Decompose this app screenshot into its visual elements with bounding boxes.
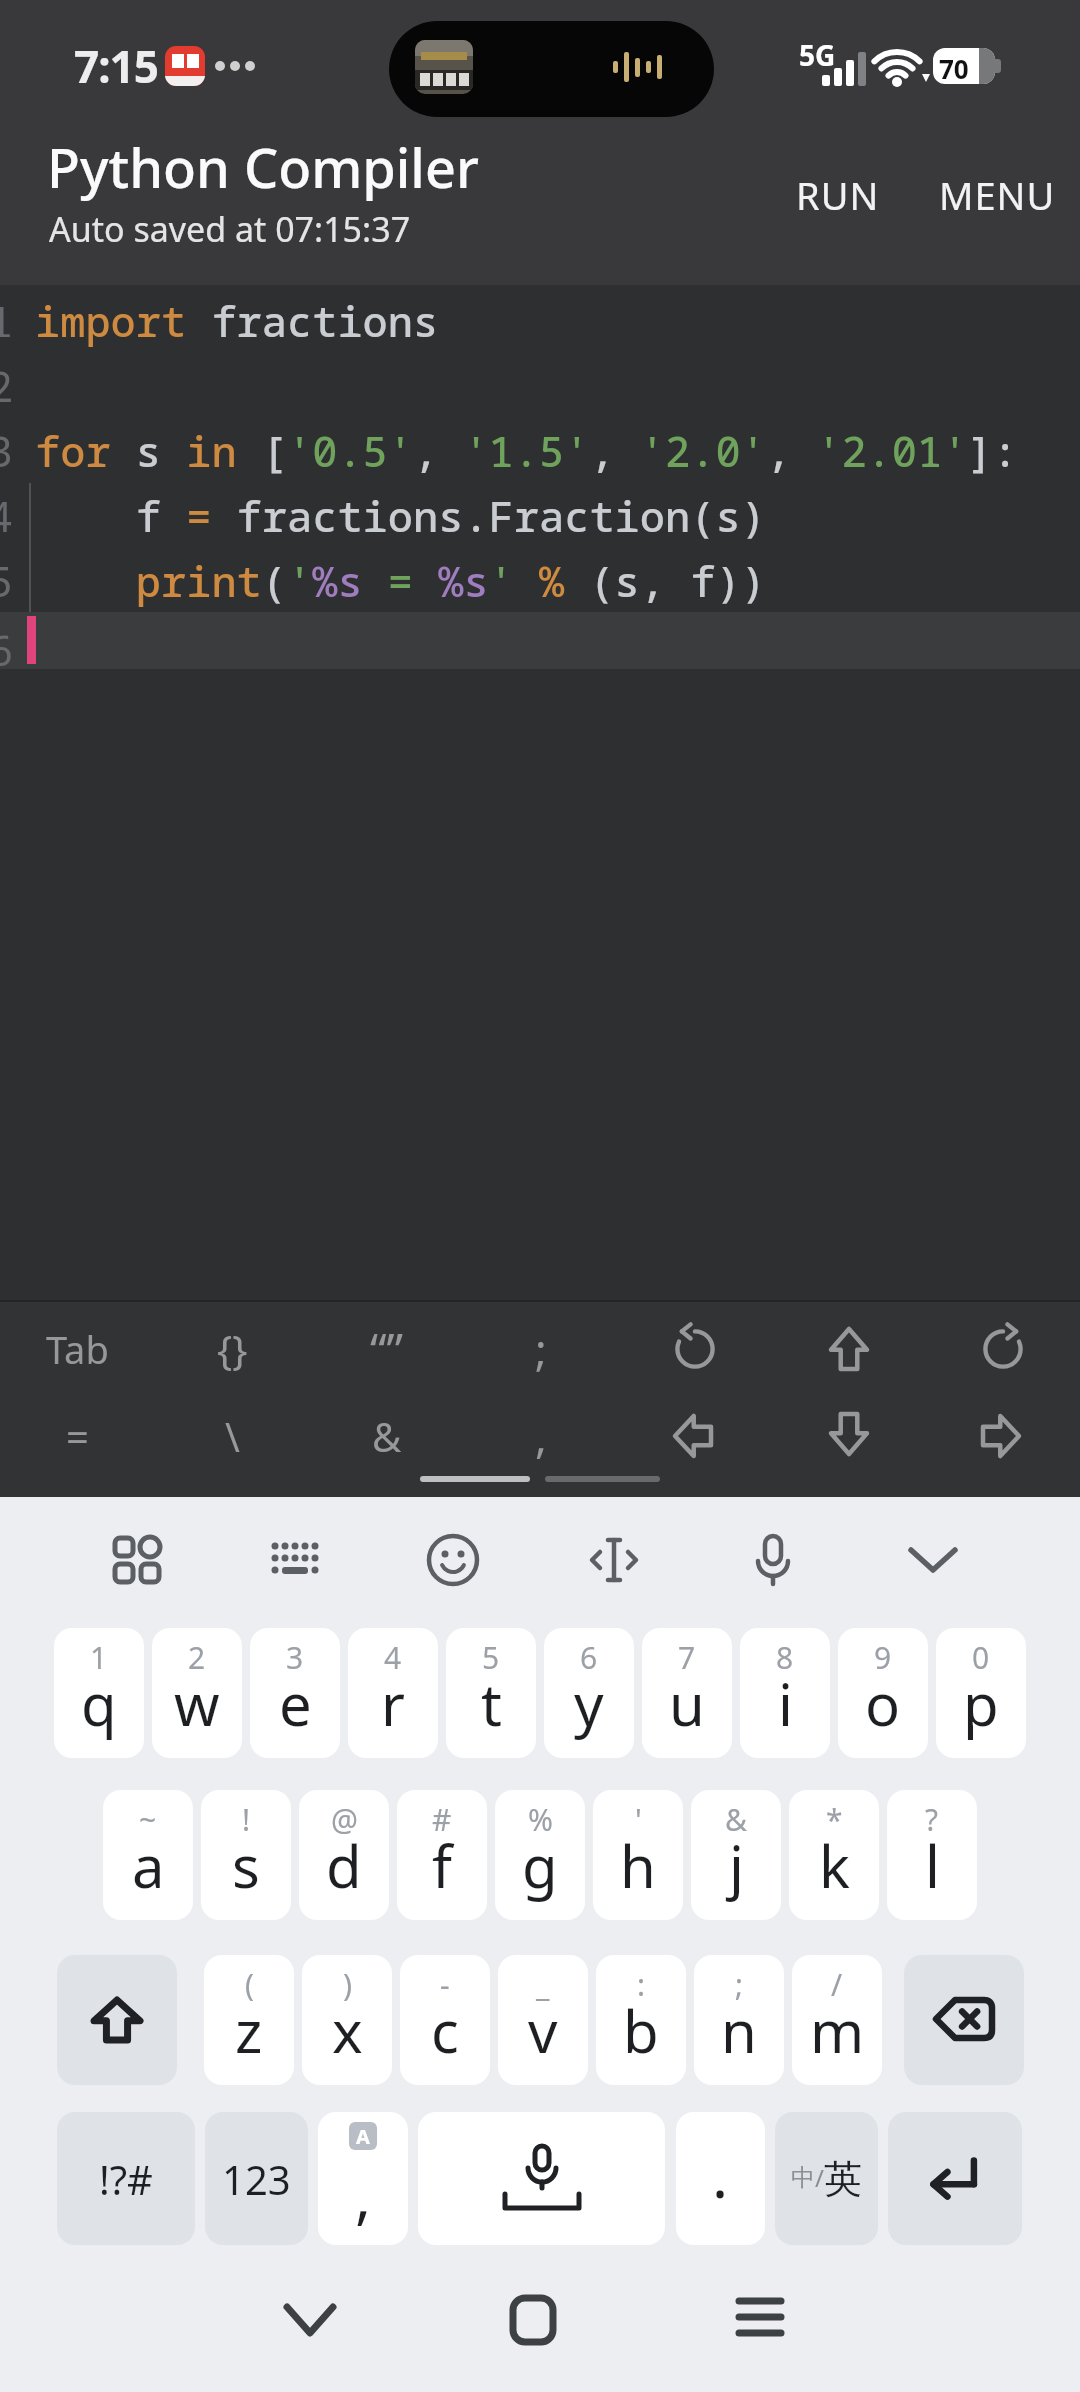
button[interactable] [413,1520,493,1600]
staticText: d [326,1826,362,1905]
staticText: y [574,1664,604,1743]
button[interactable]: “” [310,1305,464,1393]
button[interactable]: - [400,1955,490,2085]
button[interactable]: {} [155,1305,310,1393]
staticText: A [356,2123,370,2150]
button[interactable]: / [792,1955,882,2085]
staticText: 70 [939,51,969,84]
staticText: ' [635,1799,642,1840]
button[interactable] [97,1520,177,1600]
staticText: 1 [0,292,14,349]
button[interactable]: ; [694,1955,784,2085]
button[interactable]: 0 [936,1628,1026,1758]
button[interactable]: % [495,1790,585,1920]
staticText: # [432,1799,452,1840]
staticText: m [810,1991,865,2070]
button[interactable] [772,1393,926,1478]
staticText: 5 [0,552,14,609]
button[interactable]: & [310,1393,464,1478]
button[interactable]: & [691,1790,781,1920]
staticText: v [528,1991,558,2070]
button[interactable]: 5 [446,1628,536,1758]
button[interactable]: _ [498,1955,588,2085]
button[interactable]: ~ [103,1790,193,1920]
staticText: Python Compiler [47,130,479,204]
button[interactable]: 1 [54,1628,144,1758]
button[interactable] [733,1520,813,1600]
button[interactable] [888,2112,1022,2245]
button[interactable]: 中 [775,2112,878,2245]
staticText: r [381,1664,405,1743]
button[interactable]: ! [201,1790,291,1920]
button[interactable] [255,1520,335,1600]
staticText: 5 [482,1637,500,1678]
button[interactable]: * [789,1790,879,1920]
staticText: j [729,1826,744,1905]
button[interactable]: A [318,2112,408,2245]
staticText: : [637,1964,646,2005]
staticText: 8 [776,1637,794,1678]
button[interactable] [772,1305,926,1393]
button[interactable] [57,1955,177,2085]
button[interactable]: ( [204,1955,294,2085]
staticText: o [865,1664,901,1743]
button[interactable]: @ [299,1790,389,1920]
button[interactable]: \ [155,1393,310,1478]
button[interactable]: 7 [642,1628,732,1758]
button[interactable]: ' [593,1790,683,1920]
button[interactable]: = [0,1393,155,1478]
staticText: 0 [972,1637,990,1678]
button[interactable]: ? [887,1790,977,1920]
button[interactable]: ) [302,1955,392,2085]
staticText: i [778,1664,793,1743]
staticText: 6 [0,621,14,678]
button[interactable]: 8 [740,1628,830,1758]
button[interactable] [893,1520,973,1600]
button[interactable] [904,1955,1024,2085]
staticText: Tab [46,1323,109,1375]
button[interactable]: 123 [205,2112,308,2245]
button[interactable]: 2 [152,1628,242,1758]
staticText: / [815,2161,824,2194]
button[interactable]: 4 [348,1628,438,1758]
button[interactable]: 6 [544,1628,634,1758]
staticText: & [372,1409,402,1463]
button[interactable]: 9 [838,1628,928,1758]
staticText: a [132,1826,165,1905]
staticText: ~ [139,1799,157,1840]
button[interactable]: . [676,2112,765,2245]
button[interactable]: MENU [927,160,1067,230]
staticText: 7:15 [74,36,158,96]
button[interactable]: : [596,1955,686,2085]
staticText: ( [245,1964,254,2005]
staticText: e [279,1664,312,1743]
button[interactable] [493,2280,573,2360]
staticText: 3 [0,422,14,479]
button[interactable] [926,1393,1080,1478]
staticText: “” [370,1318,404,1381]
staticText: k [819,1826,850,1905]
button[interactable]: RUN [780,160,895,230]
staticText: f = fractions.Fraction(s) [35,487,766,544]
button[interactable] [418,2112,665,2245]
staticText: , [535,1406,547,1466]
button[interactable] [574,1520,654,1600]
button[interactable]: # [397,1790,487,1920]
staticText: 1 [90,1637,108,1678]
staticText: MENU [939,169,1056,221]
button[interactable]: !?# [57,2112,195,2245]
staticText: 2 [0,357,14,414]
staticText: . [712,2134,729,2216]
button[interactable]: Tab [0,1305,155,1393]
button[interactable] [926,1305,1080,1393]
staticText: & [725,1799,747,1840]
button[interactable]: , [464,1393,618,1478]
button[interactable] [720,2280,800,2360]
button[interactable] [618,1393,772,1478]
staticText: for s in ['0.5', '1.5', '2.0', '2.01']: [35,422,1018,479]
staticText: import fractions [35,292,439,349]
button[interactable]: 3 [250,1628,340,1758]
button[interactable] [270,2280,350,2360]
button[interactable]: ; [464,1305,618,1393]
button[interactable] [618,1305,772,1393]
